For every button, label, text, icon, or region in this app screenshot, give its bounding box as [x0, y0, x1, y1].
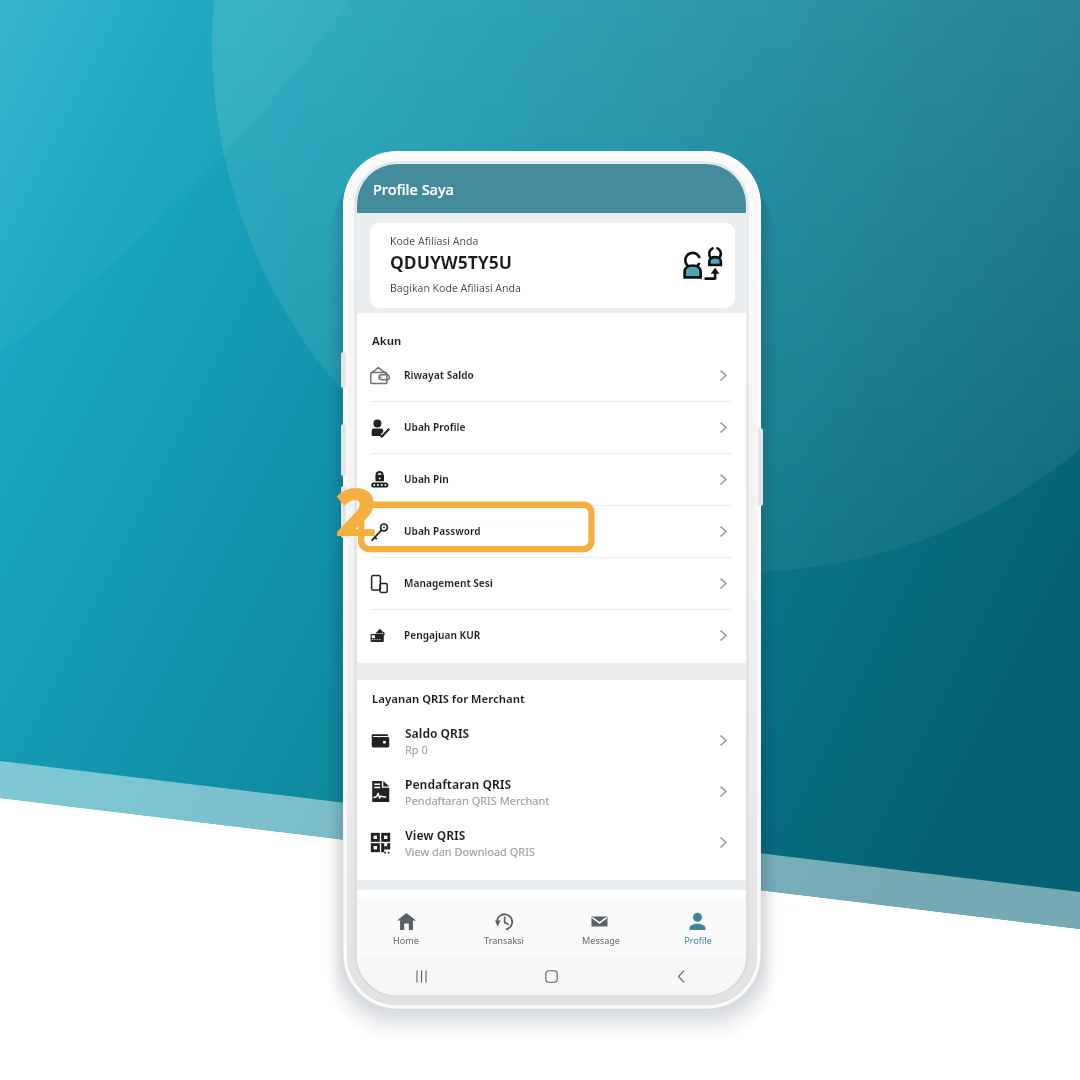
- staticText: Akun: [372, 333, 402, 348]
- button[interactable]: Ubah Pin: [357, 454, 746, 505]
- staticText: Ubah Password: [404, 524, 481, 538]
- staticText: Profile Saya: [373, 179, 454, 199]
- button[interactable]: Riwayat Saldo: [357, 350, 746, 401]
- staticText: View QRIS: [405, 827, 466, 843]
- button[interactable]: Pendaftaran QRIS: [357, 766, 746, 817]
- button[interactable]: Message: [552, 899, 649, 957]
- staticText: Bagikan Kode Afiliasi Anda: [390, 281, 521, 295]
- button[interactable]: Recent apps: [357, 957, 486, 995]
- staticText: Message: [582, 934, 620, 946]
- button[interactable]: Saldo QRIS: [357, 715, 746, 766]
- staticText: Rp 0: [405, 742, 428, 757]
- staticText: QDUYW5TY5U: [390, 250, 513, 274]
- button[interactable]: View QRIS: [357, 817, 746, 868]
- staticText: 2: [335, 464, 378, 536]
- button[interactable]: Management Sesi: [357, 558, 746, 609]
- staticText: Management Sesi: [404, 576, 493, 590]
- button[interactable]: Back: [616, 957, 746, 995]
- button[interactable]: Profile: [649, 899, 746, 957]
- button[interactable]: Home: [357, 899, 455, 957]
- staticText: Pendaftaran QRIS Merchant: [405, 793, 550, 808]
- staticText: Home: [393, 934, 419, 946]
- staticText: Profile: [684, 934, 712, 946]
- button[interactable]: Ubah Profile: [357, 402, 746, 453]
- button[interactable]: Home: [486, 957, 616, 995]
- button[interactable]: Ubah Password: [357, 506, 746, 557]
- staticText: Riwayat Saldo: [404, 368, 474, 382]
- staticText: Kode Afiliasi Anda: [390, 234, 479, 248]
- button[interactable]: Kode Afiliasi Anda: [370, 223, 735, 308]
- staticText: Layanan QRIS for Merchant: [372, 691, 525, 706]
- staticText: Pengajuan KUR: [404, 628, 481, 642]
- staticText: Pendaftaran QRIS: [405, 776, 512, 792]
- staticText: View dan Download QRIS: [405, 844, 535, 859]
- staticText: Ubah Profile: [404, 420, 466, 434]
- button[interactable]: Pengajuan KUR: [357, 610, 746, 661]
- staticText: Saldo QRIS: [405, 725, 470, 741]
- staticText: Ubah Pin: [404, 472, 449, 486]
- button[interactable]: Transaksi: [455, 899, 552, 957]
- staticText: Transaksi: [484, 934, 524, 946]
